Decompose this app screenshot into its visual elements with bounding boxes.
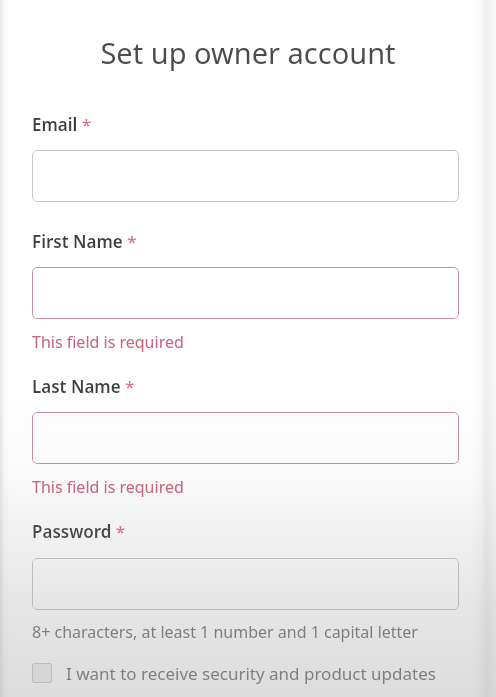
staticText: This field is required: [32, 476, 184, 498]
button[interactable]: [32, 150, 459, 202]
staticText: Email *: [32, 113, 92, 136]
button[interactable]: [32, 558, 459, 610]
staticText: Last Name *: [32, 375, 135, 398]
staticText: Set up owner account: [0, 33, 496, 72]
staticText: I want to receive security and product u…: [66, 662, 436, 685]
button[interactable]: [32, 267, 459, 319]
button[interactable]: Receive updates: [32, 658, 459, 688]
button[interactable]: [32, 412, 459, 464]
staticText: First Name *: [32, 230, 137, 253]
staticText: 8+ characters, at least 1 number and 1 c…: [32, 621, 418, 643]
other: Receive updates: [32, 663, 52, 683]
staticText: This field is required: [32, 331, 184, 353]
staticText: Password *: [32, 520, 126, 543]
